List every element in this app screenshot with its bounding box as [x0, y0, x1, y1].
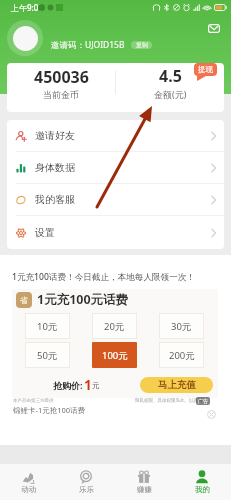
staticText: 邀请好友	[35, 129, 75, 142]
staticText: 复制	[136, 41, 148, 49]
staticText: 设置	[35, 226, 55, 239]
button[interactable]: 30元	[159, 313, 204, 339]
staticText: 动动	[21, 485, 36, 494]
staticText: 马上充值	[158, 379, 196, 391]
staticText: 赚赚	[137, 485, 152, 494]
staticText: 我的	[195, 485, 210, 494]
staticText: 30元	[171, 320, 192, 333]
button[interactable]: 设置	[7, 216, 224, 249]
staticText: 抢购价:	[53, 379, 83, 391]
staticText: 1	[84, 376, 92, 394]
staticText: 广告	[198, 398, 208, 404]
staticText: 200元	[169, 349, 195, 362]
staticText: 本产品由第三方提供	[13, 398, 54, 404]
staticText: 我的客服	[35, 193, 75, 206]
button[interactable]: 邀请好友	[7, 120, 224, 151]
button[interactable]: Close ad	[207, 410, 216, 419]
staticText: 身体数据	[35, 161, 75, 174]
button[interactable]: 我的客服	[7, 184, 224, 215]
staticText: 20元	[104, 320, 125, 333]
button[interactable]: 450036	[7, 63, 115, 102]
button[interactable]: 4.5	[116, 63, 224, 102]
staticText: 4.5	[159, 65, 182, 87]
button[interactable]: 复制	[131, 41, 152, 49]
staticText: 1元充100话费！今日截止，本地每人限领一次！	[12, 271, 195, 283]
staticText: 元	[92, 381, 100, 390]
button[interactable]: 动动	[0, 464, 57, 500]
staticText: 隐私权限、具体权限见此、以及用	[135, 398, 203, 404]
button[interactable]: 我的	[173, 464, 231, 500]
staticText: 锦鲤卡-1元抢100话费	[13, 405, 86, 415]
staticText: 100元	[102, 349, 128, 362]
staticText: 1元充100元话费	[37, 291, 129, 308]
staticText: 邀请码：UJOID15B	[51, 39, 125, 51]
button[interactable]: 20元	[92, 313, 137, 339]
button[interactable]: 乐乐	[57, 464, 115, 500]
button[interactable]: 身体数据	[7, 152, 224, 183]
button[interactable]: Profile avatar	[7, 20, 43, 56]
button[interactable]: Messages	[203, 18, 224, 39]
button[interactable]: 马上充值	[140, 377, 213, 393]
button[interactable]: 100元	[92, 342, 137, 368]
button[interactable]: 200元	[159, 342, 204, 368]
staticText: 10元	[37, 320, 58, 333]
staticText: 提现	[198, 65, 213, 74]
button[interactable]: 10元	[25, 313, 70, 339]
staticText: 当前金币	[43, 89, 79, 100]
button[interactable]: 50元	[25, 342, 70, 368]
staticText: 50元	[37, 349, 58, 362]
staticText: 450036	[34, 66, 89, 88]
staticText: 上午9:01	[11, 2, 43, 13]
staticText: 金额(元)	[154, 88, 187, 100]
staticText: 省	[20, 295, 28, 305]
staticText: 乐乐	[79, 485, 94, 494]
button[interactable]: 提现	[194, 63, 217, 81]
button[interactable]: 赚赚	[115, 464, 173, 500]
